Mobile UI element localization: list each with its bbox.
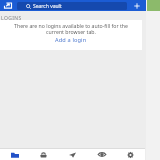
button[interactable]: Generator bbox=[87, 149, 116, 160]
staticText: Search vault bbox=[33, 3, 62, 10]
button[interactable]: Current tab bbox=[1, 0, 15, 11]
button[interactable]: Send bbox=[58, 149, 87, 160]
button[interactable]: Add a login bbox=[55, 36, 87, 44]
button[interactable]: My vault bbox=[0, 149, 29, 160]
staticText: LOGINS bbox=[1, 15, 22, 22]
button[interactable]: Settings bbox=[116, 149, 145, 160]
staticText: Add a login bbox=[55, 36, 87, 44]
button[interactable]: Lock bbox=[29, 149, 58, 160]
staticText: There are no logins available to auto-fi… bbox=[12, 22, 130, 36]
button[interactable]: Add item bbox=[130, 0, 144, 11]
button[interactable]: Search vault bbox=[17, 2, 127, 10]
